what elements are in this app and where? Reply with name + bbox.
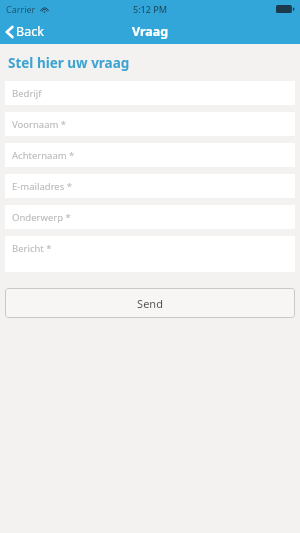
button[interactable]: Bedrijf	[5, 81, 295, 105]
staticText: Achternaam *	[12, 149, 75, 161]
staticText: Stel hier uw vraag	[8, 54, 130, 72]
button[interactable]: Send	[5, 288, 295, 318]
button[interactable]: Achternaam *	[5, 143, 295, 167]
staticText: Bericht *	[12, 242, 52, 255]
button[interactable]: Onderwerp *	[5, 205, 295, 229]
staticText: Send	[137, 296, 163, 311]
button[interactable]: Back	[0, 20, 52, 43]
staticText: 5:12 PM	[133, 3, 167, 15]
staticText: Bedrijf	[12, 87, 42, 99]
button[interactable]: E-mailadres *	[5, 174, 295, 198]
button[interactable]: Voornaam *	[5, 112, 295, 136]
staticText: Voornaam *	[12, 118, 67, 130]
staticText: Vraag	[132, 23, 169, 40]
button[interactable]: Bericht *	[5, 236, 295, 272]
staticText: Carrier	[6, 3, 36, 15]
staticText: Back	[16, 23, 44, 40]
staticText: E-mailadres *	[12, 180, 72, 192]
staticText: Onderwerp *	[12, 211, 71, 223]
